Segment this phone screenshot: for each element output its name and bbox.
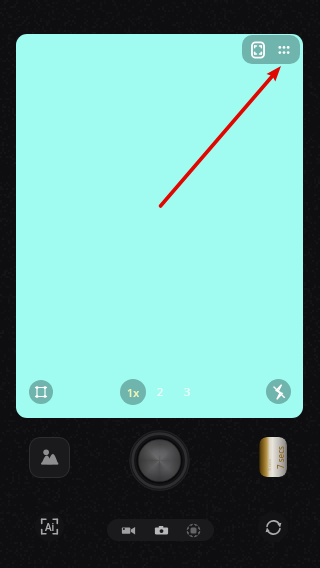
staticText: Ai — [45, 520, 55, 534]
button[interactable]: Photo mode — [149, 519, 173, 541]
button[interactable]: Flash off — [266, 379, 291, 404]
button[interactable]: Timer 7 seconds — [259, 437, 287, 477]
button[interactable]: More options — [271, 37, 296, 62]
button[interactable]: Video mode — [116, 519, 140, 541]
button[interactable]: Pro mode — [181, 519, 205, 541]
staticText: 1x — [127, 385, 140, 400]
staticText: 2 — [157, 384, 164, 399]
button[interactable]: 2 — [150, 381, 170, 401]
button[interactable]: Switch camera — [258, 512, 288, 542]
button[interactable]: 1x — [120, 379, 146, 405]
staticText: 6 secs — [266, 458, 271, 470]
staticText: 7 secs — [275, 446, 286, 469]
button[interactable]: Gallery — [29, 437, 70, 478]
button[interactable]: Shutter — [129, 430, 190, 491]
button[interactable]: Document scan — [245, 37, 270, 62]
staticText: 3 — [184, 384, 191, 399]
button[interactable]: 3 — [177, 381, 197, 401]
button[interactable]: AI scene detection — [35, 512, 64, 541]
button[interactable]: Aspect ratio — [29, 380, 53, 404]
